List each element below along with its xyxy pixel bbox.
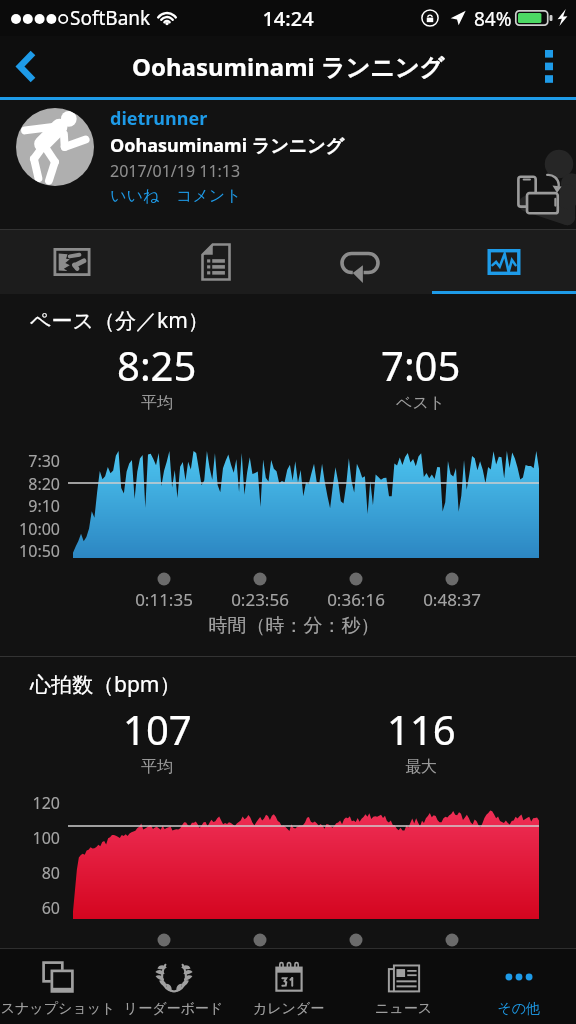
staticText: カレンダー: [231, 1000, 346, 1018]
staticText: dietrunner: [110, 106, 208, 131]
button[interactable]: Map: [0, 230, 144, 294]
staticText: SoftBank: [70, 5, 151, 31]
staticText: 80: [0, 862, 60, 884]
staticText: 14:24: [0, 5, 576, 32]
staticText: 0:48:37: [404, 588, 500, 611]
button[interactable]: ニュース: [346, 949, 461, 1024]
button[interactable]: Laps: [288, 230, 432, 294]
button[interactable]: リーダーボード: [116, 949, 231, 1024]
staticText: 平均: [141, 757, 173, 777]
staticText: 平均: [141, 393, 173, 413]
staticText: 0:36:16: [308, 588, 404, 611]
button[interactable]: More options: [522, 36, 576, 97]
staticText: 時間（時：分：秒）: [6, 614, 576, 638]
button[interactable]: スナップショット: [0, 949, 116, 1024]
button[interactable]: Graphs: [432, 230, 576, 294]
staticText: 60: [0, 897, 60, 919]
staticText: 10:50: [0, 540, 60, 562]
staticText: 8:20: [0, 473, 60, 495]
staticText: ペース（分／km）: [30, 306, 209, 335]
staticText: 心拍数（bpm）: [30, 670, 181, 699]
staticText: 9:10: [0, 495, 60, 517]
staticText: 10:00: [0, 518, 60, 540]
staticText: 100: [0, 827, 60, 849]
staticText: 84%: [474, 6, 512, 32]
button[interactable]: カレンダー: [231, 949, 346, 1024]
staticText: ニュース: [346, 1000, 461, 1018]
staticText: 107: [123, 702, 192, 756]
staticText: 0:23:56: [212, 588, 308, 611]
button[interactable]: いいね: [110, 186, 160, 206]
staticText: 116: [387, 702, 456, 756]
staticText: 2017/01/19 11:13: [110, 160, 241, 182]
staticText: 120: [0, 792, 60, 814]
button[interactable]: Rotate screen: [512, 168, 568, 224]
staticText: Oohasuminami ランニング: [132, 50, 444, 83]
staticText: ベスト: [396, 393, 446, 413]
staticText: スナップショット: [0, 1000, 116, 1018]
staticText: 7:30: [0, 450, 60, 472]
staticText: Oohasuminami ランニング: [110, 133, 344, 158]
button[interactable]: その他: [461, 949, 576, 1024]
staticText: 7:05: [381, 338, 461, 392]
staticText: 最大: [405, 757, 437, 777]
button[interactable]: Back: [0, 36, 52, 97]
staticText: リーダーボード: [116, 1000, 231, 1018]
staticText: 8:25: [117, 338, 197, 392]
button[interactable]: コメント: [176, 186, 242, 206]
staticText: その他: [461, 1000, 576, 1018]
button[interactable]: Details: [144, 230, 288, 294]
staticText: 0:11:35: [116, 588, 212, 611]
